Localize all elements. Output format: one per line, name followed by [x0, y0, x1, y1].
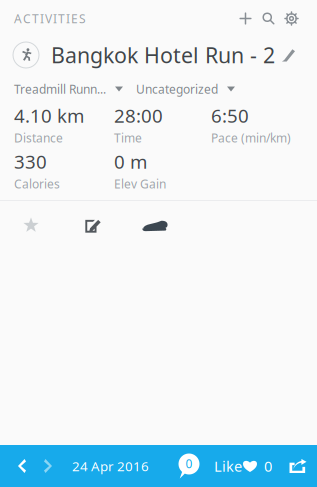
staticText: Elev Gain: [114, 176, 166, 192]
staticText: 24 Apr 2016: [72, 457, 149, 475]
staticText: 6:50: [211, 103, 249, 128]
staticText: 4.10 km: [14, 103, 84, 128]
staticText: Treadmill Runn...: [14, 81, 106, 97]
staticText: 0 m: [114, 149, 147, 174]
staticText: Uncategorized: [136, 81, 218, 97]
staticText: 330: [14, 149, 47, 174]
staticText: 0: [264, 456, 272, 476]
button[interactable]: Settings: [280, 6, 303, 30]
staticText: Pace (min/km): [211, 130, 291, 146]
button[interactable]: Gear: [124, 201, 186, 249]
staticText: Calories: [14, 176, 60, 192]
button[interactable]: Share: [281, 445, 315, 487]
staticText: 0: [185, 455, 192, 471]
button[interactable]: Like: [205, 445, 281, 487]
button[interactable]: Next activity: [35, 445, 61, 487]
staticText: Time: [114, 130, 142, 146]
button[interactable]: Search: [257, 6, 280, 30]
staticText: Bangkok Hotel Run - 2: [51, 41, 275, 69]
staticText: Distance: [14, 130, 63, 146]
button[interactable]: Favorite: [0, 201, 62, 249]
button[interactable]: Treadmill Runn...: [14, 80, 136, 98]
staticText: Like: [214, 456, 242, 476]
staticText: 28:00: [114, 103, 163, 128]
button[interactable]: Comments: [173, 445, 205, 487]
button[interactable]: 24 Apr 2016: [61, 445, 157, 487]
staticText: A C T I V I T I E S: [14, 10, 86, 26]
button[interactable]: Add activity: [234, 6, 257, 30]
button[interactable]: Notes: [62, 201, 124, 249]
button[interactable]: Uncategorized: [136, 80, 235, 98]
button[interactable]: Edit activity name: [275, 42, 302, 68]
button[interactable]: Previous activity: [9, 445, 35, 487]
